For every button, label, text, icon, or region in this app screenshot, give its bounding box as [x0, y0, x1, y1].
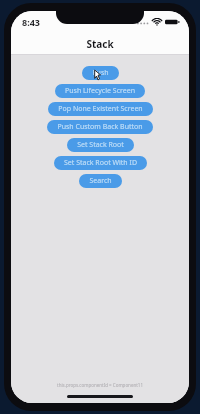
button[interactable]: Set Stack Root: [67, 138, 134, 152]
staticText: Stack: [86, 37, 114, 51]
button[interactable]: Pop None Existent Screen: [48, 102, 153, 116]
button[interactable]: Search: [79, 174, 122, 188]
staticText: Search: [89, 176, 112, 186]
staticText: Push Lifecycle Screen: [65, 86, 135, 96]
button[interactable]: Push: [82, 66, 119, 80]
staticText: Pop None Existent Screen: [58, 104, 143, 114]
staticText: 8:43: [22, 16, 40, 28]
button[interactable]: Push Lifecycle Screen: [55, 84, 145, 98]
staticText: Set Stack Root With ID: [64, 158, 137, 168]
button[interactable]: Set Stack Root With ID: [54, 156, 147, 170]
button[interactable]: Push Custom Back Button: [47, 120, 153, 134]
staticText: Push: [92, 68, 109, 78]
staticText: this.props.componentId = Component11: [57, 382, 143, 388]
staticText: Set Stack Root: [77, 140, 124, 150]
staticText: Push Custom Back Button: [57, 122, 143, 132]
